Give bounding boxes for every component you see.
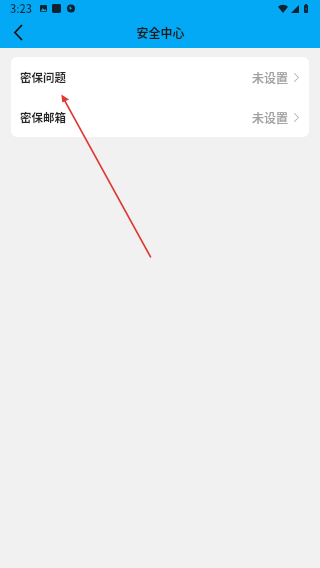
staticText: 密保问题 bbox=[20, 69, 66, 86]
staticText: 未设置 bbox=[252, 109, 289, 126]
staticText: 3:23 bbox=[10, 0, 33, 16]
staticText: 安全中心 bbox=[136, 24, 185, 41]
staticText: 未设置 bbox=[252, 69, 289, 86]
button[interactable]: 密保问题 bbox=[11, 57, 309, 97]
button[interactable]: 密保邮箱 bbox=[11, 97, 309, 137]
staticText: 密保邮箱 bbox=[20, 109, 66, 126]
button[interactable]: Back bbox=[0, 16, 38, 48]
